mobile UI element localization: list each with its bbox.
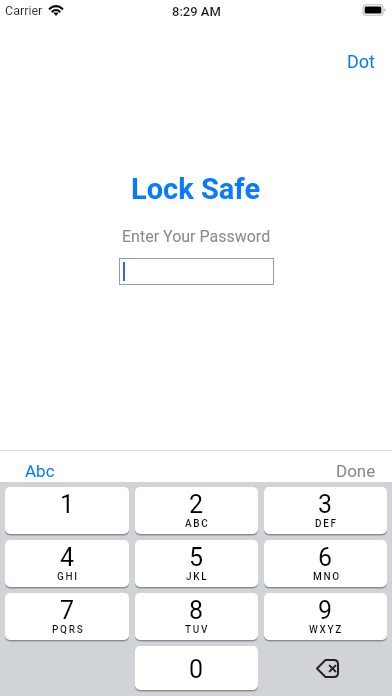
staticText: 3	[318, 490, 333, 519]
button[interactable]: Dot	[336, 46, 386, 77]
staticText: PQRS	[52, 624, 85, 636]
button[interactable]: 5	[135, 540, 258, 587]
staticText: 1	[60, 490, 75, 519]
button[interactable]: 1	[5, 487, 129, 534]
staticText: 7	[60, 596, 75, 625]
staticText: 8:29 AM	[172, 4, 221, 19]
staticText: TUV	[185, 624, 210, 636]
button[interactable]: Done	[316, 457, 392, 482]
staticText: GHI	[57, 571, 79, 583]
button[interactable]: 3	[264, 487, 387, 534]
button[interactable]: Password input field	[120, 259, 273, 284]
staticText: Abc	[25, 461, 55, 478]
button[interactable]: 6	[264, 540, 387, 587]
staticText: 4	[60, 543, 75, 572]
staticText: MNO	[313, 571, 341, 583]
staticText: Done	[336, 461, 376, 478]
staticText: 2	[189, 490, 204, 519]
staticText: 6	[318, 543, 333, 572]
button[interactable]: 8	[135, 593, 258, 640]
staticText: Carrier	[5, 3, 43, 18]
button[interactable]: Backspace	[264, 646, 387, 690]
button[interactable]: 0	[135, 646, 258, 690]
button[interactable]: 4	[5, 540, 129, 587]
staticText: 8	[189, 596, 204, 625]
button[interactable]: 7	[5, 593, 129, 640]
staticText: WXYZ	[309, 624, 344, 636]
staticText: 0	[189, 655, 204, 684]
staticText: 9	[318, 596, 333, 625]
staticText: JKL	[186, 571, 209, 583]
button[interactable]: 9	[264, 593, 387, 640]
staticText: ABC	[185, 518, 210, 530]
button[interactable]: 2	[135, 487, 258, 534]
staticText: Enter Your Password	[122, 227, 271, 246]
button[interactable]: Abc	[0, 457, 75, 482]
staticText: Lock Safe	[131, 172, 261, 206]
staticText: 5	[189, 543, 204, 572]
staticText: Dot	[347, 51, 375, 72]
staticText: DEF	[315, 518, 338, 530]
